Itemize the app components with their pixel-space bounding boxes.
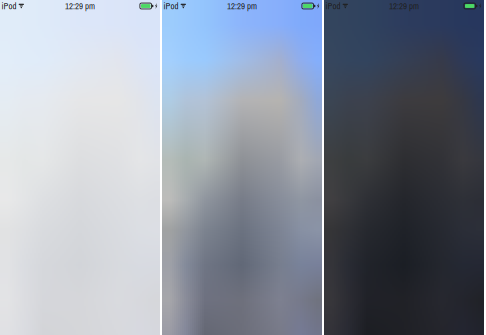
staticText: 12:29 pm — [227, 0, 257, 12]
staticText: iPod — [325, 0, 340, 12]
staticText: iPod — [163, 0, 178, 12]
staticText: iPod — [1, 0, 16, 12]
staticText: 12:29 pm — [65, 0, 95, 12]
staticText: 12:29 pm — [389, 0, 419, 12]
